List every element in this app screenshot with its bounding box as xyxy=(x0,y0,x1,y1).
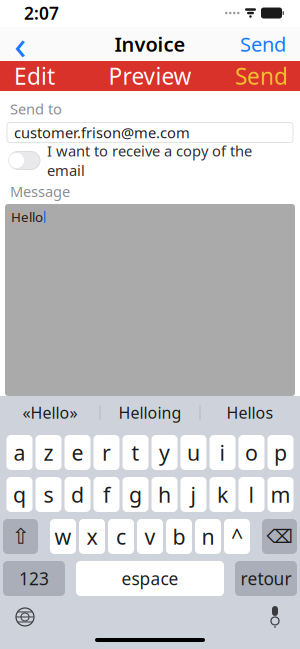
staticText: Invoice xyxy=(114,31,185,57)
staticText: m xyxy=(270,480,290,509)
staticText: c xyxy=(116,522,126,551)
button[interactable]: espace xyxy=(76,561,224,596)
staticText: Send xyxy=(240,31,286,57)
staticText: 2:07 xyxy=(24,1,59,24)
button[interactable]: Back xyxy=(0,27,40,61)
staticText: p xyxy=(274,438,287,467)
button[interactable]: Delete xyxy=(262,519,297,554)
button[interactable]: i xyxy=(209,435,235,470)
staticText: ‹ xyxy=(14,17,26,71)
button[interactable]: retour xyxy=(235,561,297,596)
button[interactable]: q xyxy=(6,477,32,512)
button[interactable]: m xyxy=(267,477,293,512)
button[interactable]: a xyxy=(6,435,32,470)
button[interactable]: n xyxy=(195,519,221,554)
staticText: z xyxy=(43,438,53,467)
button[interactable]: z xyxy=(35,435,61,470)
staticText: i xyxy=(219,438,225,467)
staticText: ^ xyxy=(231,522,243,551)
button[interactable]: p xyxy=(267,435,293,470)
button[interactable]: Shift xyxy=(3,519,38,554)
staticText: e xyxy=(71,438,83,467)
staticText: r xyxy=(102,438,111,467)
button[interactable]: s xyxy=(35,477,61,512)
staticText: s xyxy=(43,480,53,509)
staticText: n xyxy=(201,522,214,551)
button[interactable]: Hellos xyxy=(200,396,299,429)
button[interactable]: Dictation xyxy=(258,602,292,632)
staticText: d xyxy=(71,480,84,509)
button[interactable]: w xyxy=(50,519,76,554)
staticText: Edit xyxy=(14,61,55,91)
button[interactable]: u xyxy=(180,435,206,470)
staticText: I want to receive a copy of the email xyxy=(47,141,252,180)
staticText: customer.frison@me.com xyxy=(14,123,190,142)
staticText: retour xyxy=(240,567,291,590)
button[interactable]: ^ xyxy=(224,519,250,554)
staticText: Hellos xyxy=(226,402,273,423)
staticText: Send to xyxy=(10,99,62,118)
button[interactable]: Preview xyxy=(108,61,191,91)
button[interactable]: y xyxy=(151,435,177,470)
staticText: espace xyxy=(121,567,178,590)
staticText: «Hello» xyxy=(22,402,77,423)
staticText: ⌫ xyxy=(266,526,292,547)
button[interactable]: g xyxy=(122,477,148,512)
button[interactable]: Helloing xyxy=(100,396,199,429)
staticText: t xyxy=(131,438,139,467)
staticText: y xyxy=(159,438,170,467)
staticText: b xyxy=(172,522,185,551)
staticText: q xyxy=(13,480,26,509)
button[interactable]: x xyxy=(79,519,105,554)
button[interactable]: r xyxy=(93,435,119,470)
staticText: u xyxy=(187,438,200,467)
button[interactable]: h xyxy=(151,477,177,512)
button[interactable]: l xyxy=(238,477,264,512)
staticText: 123 xyxy=(19,567,49,590)
staticText: Preview xyxy=(108,61,191,91)
staticText: Hello xyxy=(11,208,43,226)
button[interactable]: t xyxy=(122,435,148,470)
staticText: j xyxy=(190,480,196,509)
button[interactable]: o xyxy=(238,435,264,470)
staticText: Helloing xyxy=(118,402,181,423)
button[interactable]: 123 xyxy=(3,561,65,596)
button[interactable]: b xyxy=(166,519,192,554)
button[interactable]: e xyxy=(64,435,90,470)
staticText: h xyxy=(158,480,171,509)
button[interactable]: j xyxy=(180,477,206,512)
staticText: k xyxy=(217,480,228,509)
staticText: w xyxy=(54,522,71,551)
button[interactable]: k xyxy=(209,477,235,512)
staticText: l xyxy=(248,480,254,509)
staticText: g xyxy=(129,480,142,509)
button[interactable]: d xyxy=(64,477,90,512)
staticText: a xyxy=(13,438,25,467)
button[interactable]: Send xyxy=(235,61,300,91)
staticText: o xyxy=(245,438,258,467)
button[interactable]: I want to receive a copy of the email xyxy=(0,147,300,173)
button[interactable]: Send xyxy=(240,27,300,61)
button[interactable]: «Hello» xyxy=(0,396,99,429)
button[interactable]: Change keyboard xyxy=(8,602,42,632)
staticText: ⇧ xyxy=(11,524,29,549)
button[interactable]: v xyxy=(137,519,163,554)
button[interactable]: Edit xyxy=(0,61,55,91)
staticText: Message xyxy=(10,181,70,201)
staticText: f xyxy=(103,480,110,509)
staticText: x xyxy=(86,522,97,551)
staticText: v xyxy=(144,522,155,551)
staticText: Send xyxy=(235,61,288,91)
button[interactable]: c xyxy=(108,519,134,554)
button[interactable]: f xyxy=(93,477,119,512)
